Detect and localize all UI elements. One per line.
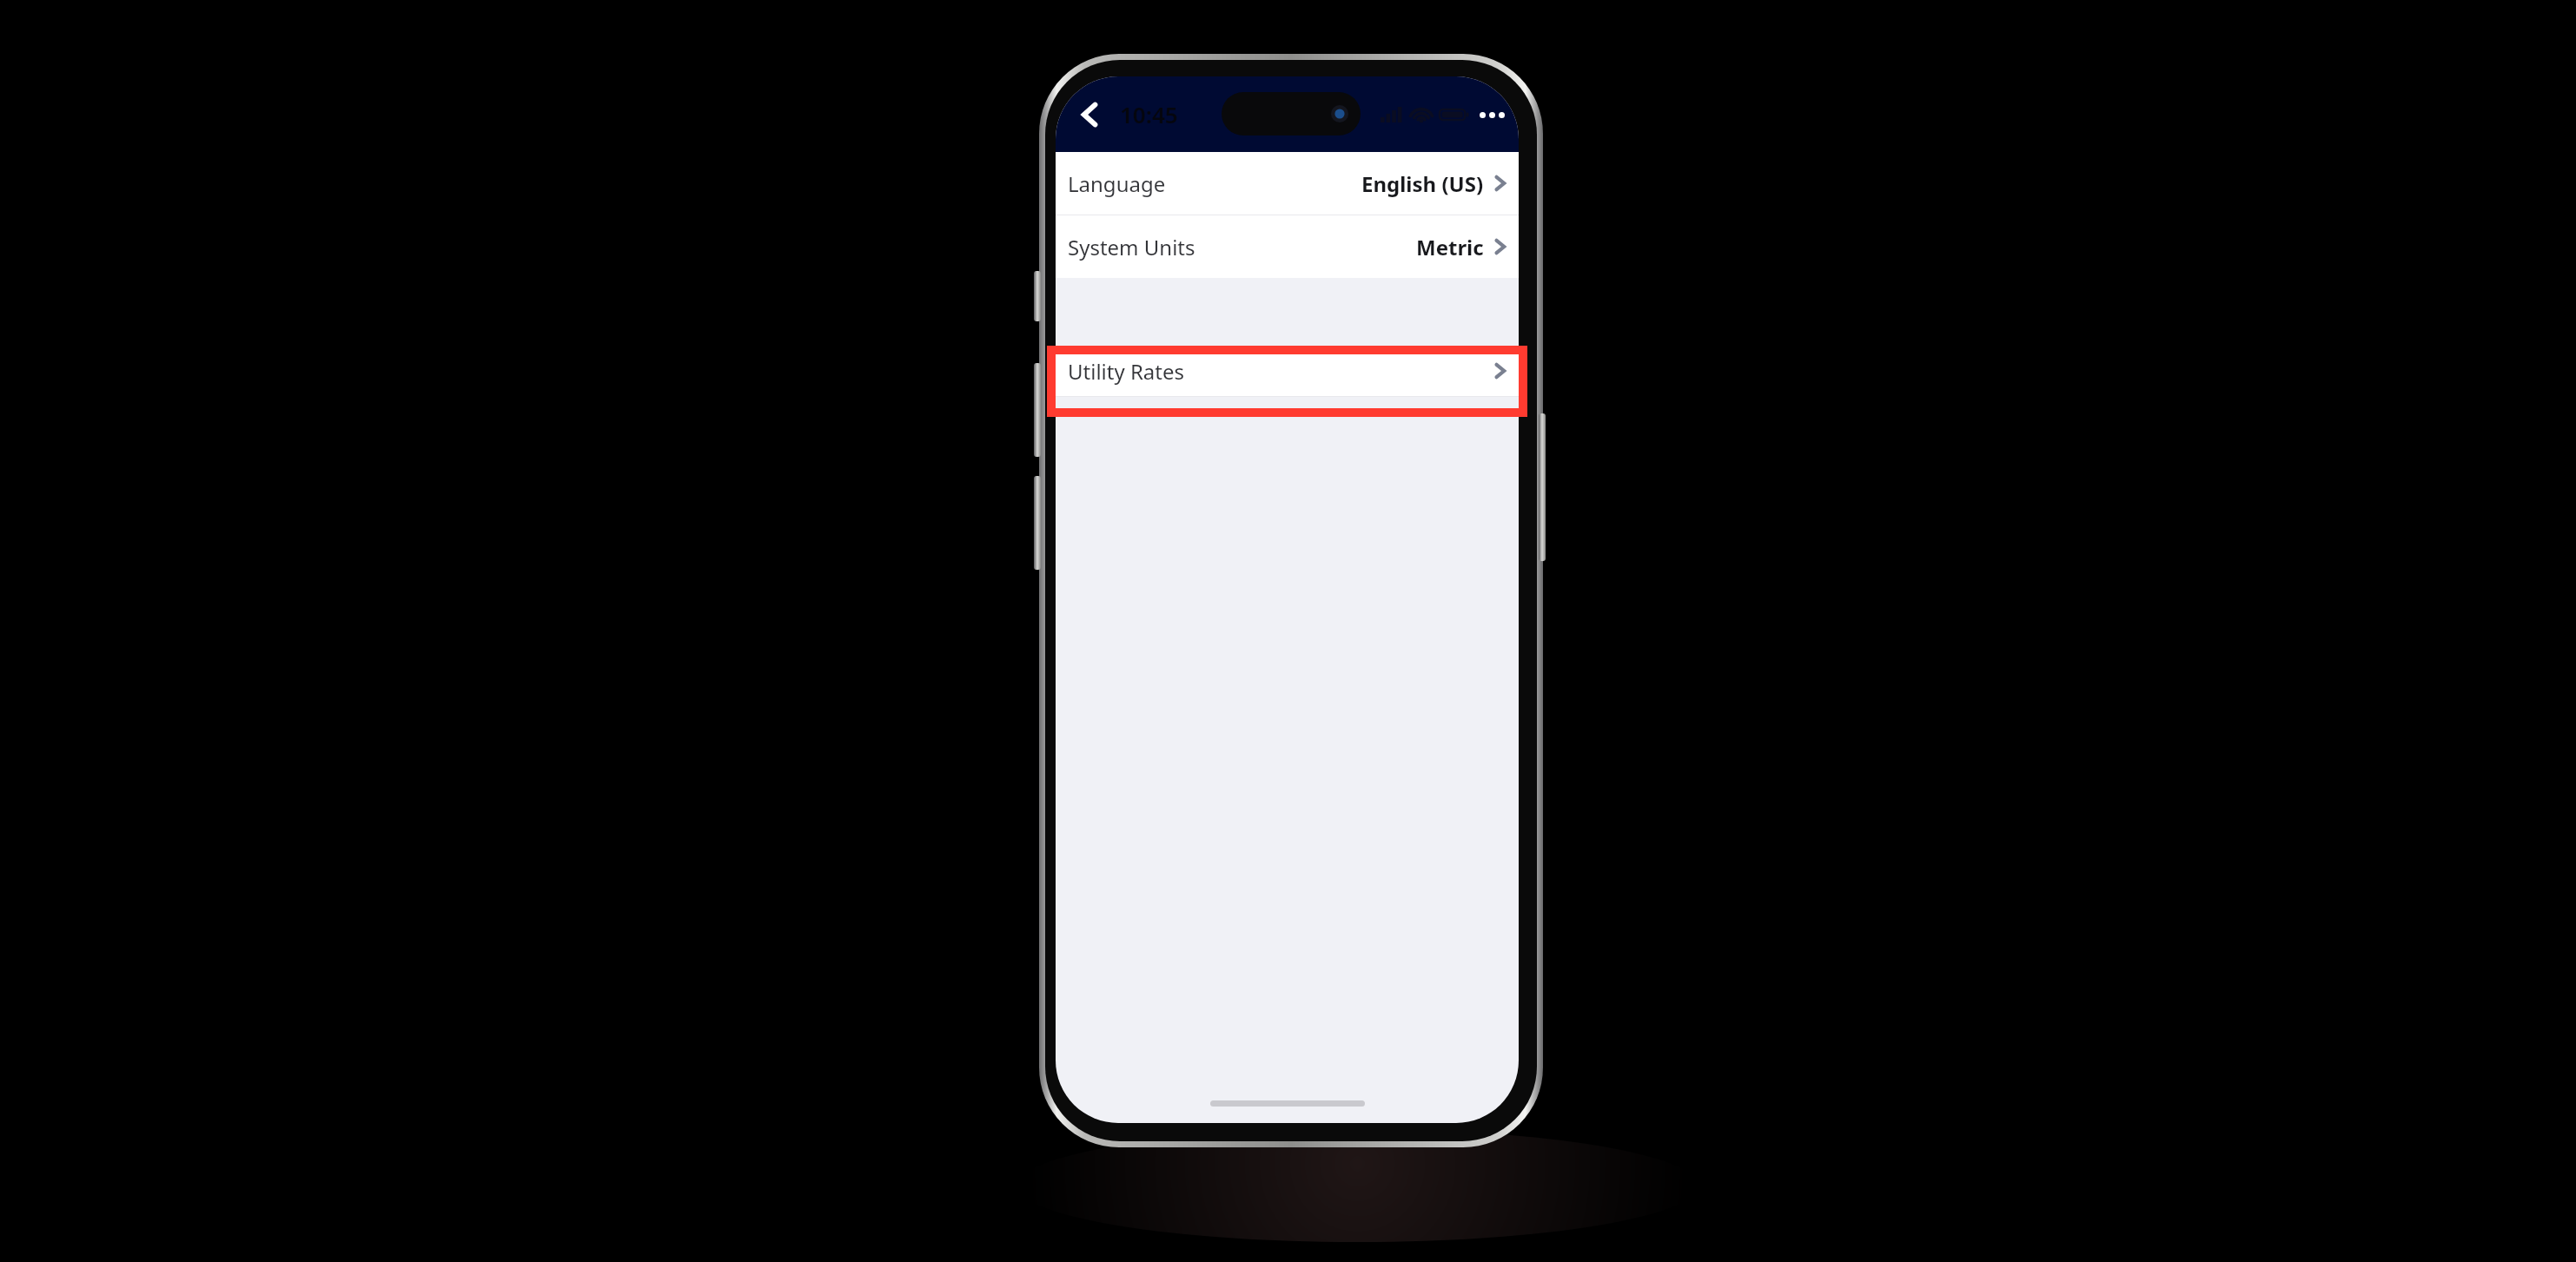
staticText: 10:45 xyxy=(1120,99,1178,129)
staticText: System Units xyxy=(1068,233,1195,261)
staticText: Language xyxy=(1068,169,1166,198)
staticText: Metric xyxy=(1416,233,1484,261)
button[interactable]: System Units xyxy=(1056,215,1519,278)
button[interactable]: Language xyxy=(1056,152,1519,215)
staticText: English (US) xyxy=(1361,169,1484,198)
button[interactable]: More options xyxy=(1478,112,1507,118)
button[interactable]: Utility Rates xyxy=(1056,346,1519,397)
staticText: Utility Rates xyxy=(1068,357,1185,386)
button[interactable]: Back xyxy=(1066,90,1115,139)
